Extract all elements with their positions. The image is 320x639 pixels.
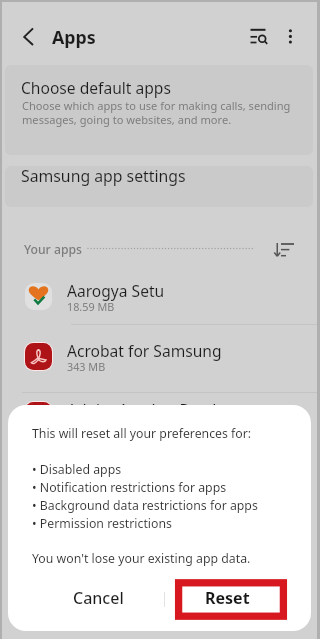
button[interactable]: Adobe Acrobat Reader [0, 399, 320, 458]
button[interactable]: Sort [270, 238, 296, 262]
staticText: Acrobat for Samsung [67, 340, 222, 361]
button[interactable]: Acrobat for Samsung [0, 340, 320, 399]
button[interactable]: More options [280, 22, 302, 50]
staticText: Adobe Acrobat Reader [67, 399, 232, 420]
staticText: This will reset all your preferences for… [32, 425, 252, 442]
button[interactable]: Search [244, 22, 272, 50]
staticText: Cancel [73, 587, 124, 609]
staticText: Choose which apps to use for making call… [22, 98, 291, 128]
staticText: You won't lose your existing app data. [32, 550, 251, 567]
staticText: • Background data restrictions for apps [32, 497, 258, 514]
staticText: • Notification restrictions for apps [32, 479, 227, 496]
staticText: Apps [52, 25, 96, 49]
button[interactable]: Aarogya Setu [0, 280, 320, 339]
staticText: Samsung app settings [21, 165, 186, 187]
staticText: 343 MB [67, 359, 106, 374]
staticText: Choose default apps [21, 77, 171, 98]
staticText: 120 MB [67, 418, 106, 433]
staticText: • Disabled apps [32, 461, 122, 478]
button[interactable]: Navigate up [12, 24, 38, 50]
staticText: 18.59 MB [67, 299, 115, 314]
staticText: Your apps [24, 241, 82, 258]
staticText: Reset [205, 587, 250, 609]
button[interactable]: Reset [186, 580, 268, 616]
button[interactable]: Cancel [57, 580, 139, 616]
staticText: • Permission restrictions [32, 515, 172, 532]
staticText: Aarogya Setu [67, 280, 165, 301]
